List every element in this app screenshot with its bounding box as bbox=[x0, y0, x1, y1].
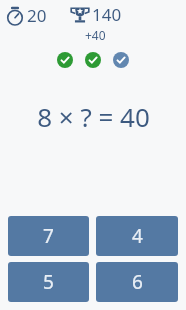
button[interactable]: 6 bbox=[96, 262, 178, 302]
button[interactable]: 4 bbox=[96, 216, 178, 256]
staticText: 5 bbox=[43, 269, 54, 295]
staticText: 6 bbox=[132, 269, 143, 295]
button[interactable]: 5 bbox=[8, 262, 89, 302]
button[interactable]: 7 bbox=[8, 216, 89, 256]
staticText: 8 × ? = 40 bbox=[37, 99, 150, 134]
staticText: 140 bbox=[92, 3, 122, 26]
staticText: 20 bbox=[27, 4, 47, 27]
staticText: +40 bbox=[85, 27, 106, 43]
staticText: 4 bbox=[132, 223, 143, 249]
staticText: 7 bbox=[43, 223, 54, 249]
other: Score bbox=[69, 4, 91, 26]
other: Timer bbox=[4, 5, 26, 27]
